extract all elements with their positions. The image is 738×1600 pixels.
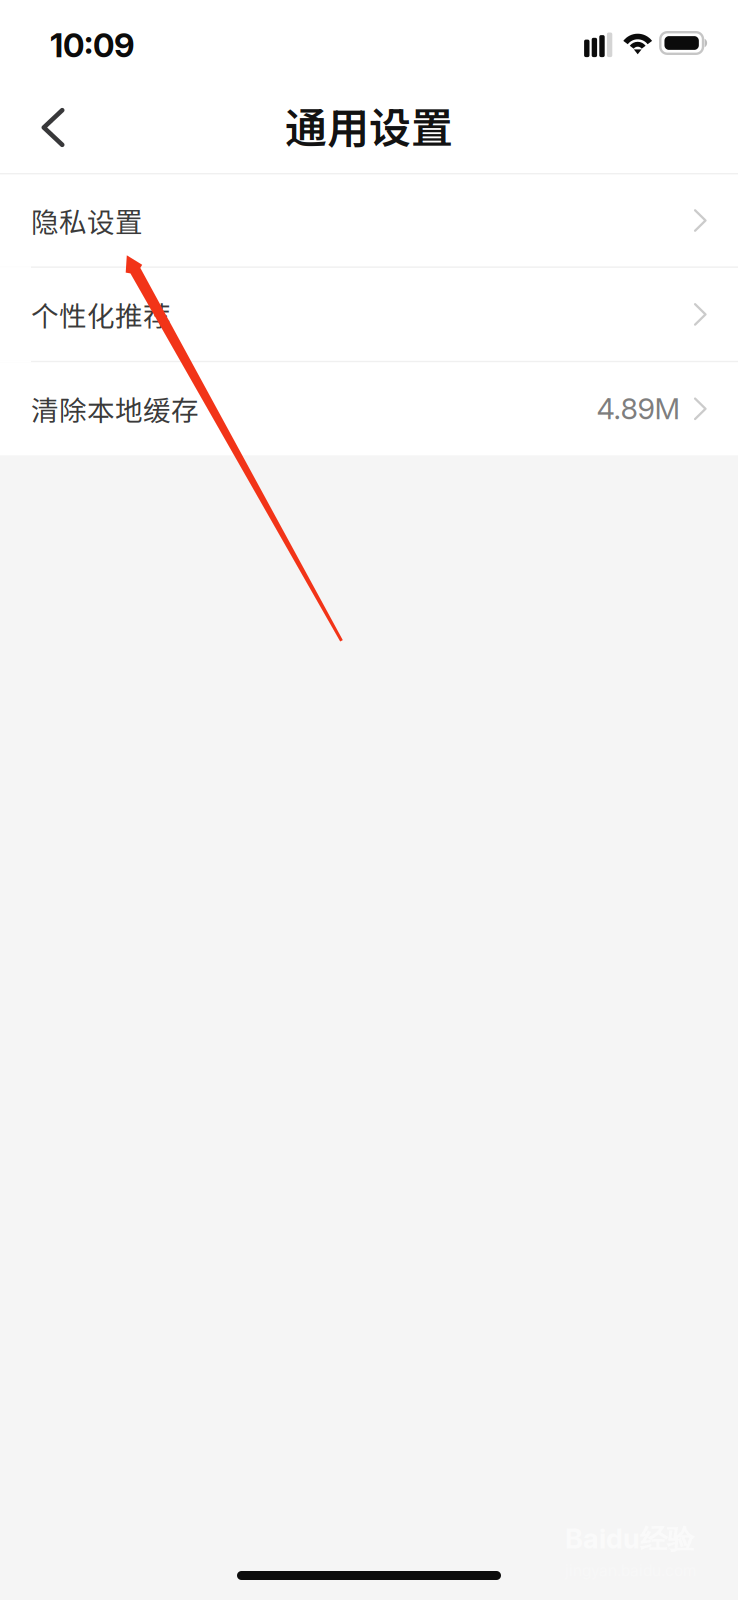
staticText: 4.89M xyxy=(597,391,681,426)
staticText: 隐私设置 xyxy=(31,200,143,240)
button[interactable]: 返回 xyxy=(0,86,86,173)
staticText: 清除本地缓存 xyxy=(31,389,199,429)
button[interactable]: 清除本地缓存 xyxy=(0,362,738,455)
staticText: 通用设置 xyxy=(285,95,453,155)
button[interactable]: 个性化推荐 xyxy=(0,268,738,361)
staticText: 10:09 xyxy=(50,26,135,65)
staticText: 个性化推荐 xyxy=(31,294,171,334)
button[interactable]: 隐私设置 xyxy=(0,174,738,266)
